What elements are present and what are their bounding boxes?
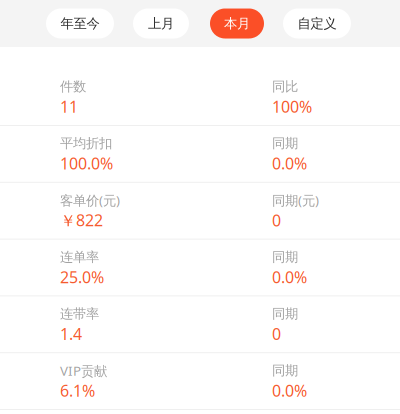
staticText: 连带率 (60, 306, 99, 322)
staticText: 本月 (224, 15, 250, 32)
staticText: 0 (272, 323, 281, 344)
staticText: 1.4 (60, 323, 82, 344)
staticText: 上月 (148, 15, 174, 32)
button[interactable]: 自定义 (283, 8, 351, 38)
staticText: 11 (60, 96, 78, 117)
staticText: 0 (272, 210, 281, 231)
staticText: 客单价(元) (60, 191, 120, 209)
button[interactable]: 上月 (133, 8, 189, 38)
staticText: 件数 (60, 78, 86, 95)
staticText: VIP贡献 (60, 362, 107, 379)
staticText: 0.0% (272, 153, 307, 174)
staticText: 100% (272, 96, 312, 117)
staticText: 同期 (272, 249, 298, 265)
staticText: 连单率 (60, 249, 99, 265)
staticText: 同期(元) (272, 191, 319, 209)
button[interactable]: 本月 (210, 8, 264, 38)
staticText: 同期 (272, 135, 298, 152)
staticText: ￥822 (60, 209, 103, 231)
staticText: 同期 (272, 306, 298, 322)
staticText: 同比 (272, 78, 298, 95)
staticText: 同期 (272, 362, 298, 379)
staticText: 25.0% (60, 266, 104, 288)
staticText: 100.0% (60, 153, 113, 174)
staticText: 自定义 (297, 15, 336, 32)
staticText: 0.0% (272, 380, 307, 401)
staticText: 0.0% (272, 266, 307, 288)
staticText: 年至今 (60, 15, 99, 32)
staticText: 平均折扣 (60, 135, 112, 152)
staticText: 6.1% (60, 380, 95, 401)
button[interactable]: 年至今 (46, 8, 114, 38)
